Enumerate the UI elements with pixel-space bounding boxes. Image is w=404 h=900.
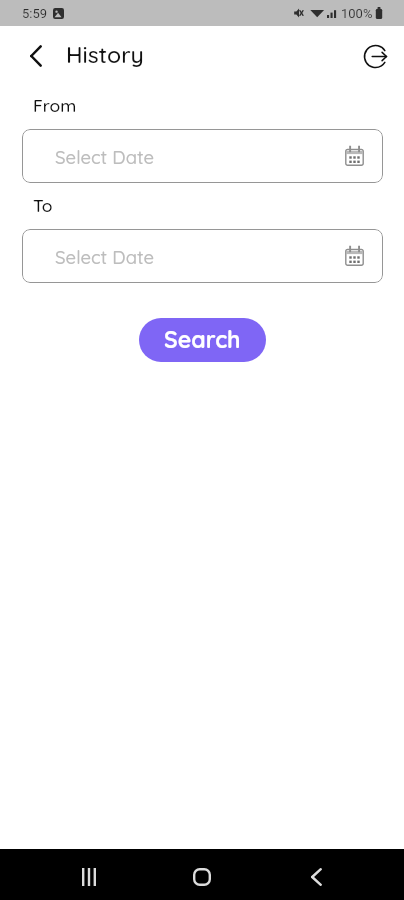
staticText: History <box>66 40 144 69</box>
button[interactable]: Select Date <box>22 229 383 283</box>
staticText: To <box>33 194 53 216</box>
button[interactable]: Search <box>139 318 266 362</box>
staticText: Search <box>164 325 241 354</box>
button[interactable]: Recent apps <box>64 852 114 900</box>
button[interactable]: Back <box>22 41 52 71</box>
button[interactable]: Home <box>177 852 227 900</box>
button[interactable]: Log out <box>359 40 391 72</box>
staticText: 5:59 <box>22 6 48 21</box>
staticText: Select Date <box>55 145 155 168</box>
staticText: 100% <box>341 6 373 21</box>
button[interactable]: Back <box>291 852 341 900</box>
staticText: Select Date <box>55 245 155 268</box>
staticText: From <box>33 94 77 116</box>
button[interactable]: Select Date <box>22 129 383 183</box>
